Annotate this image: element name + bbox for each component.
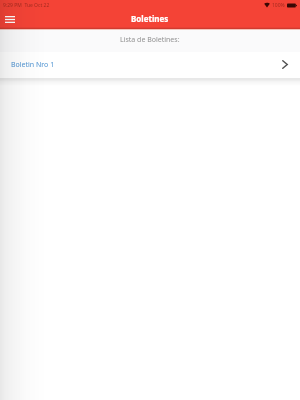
staticText: 100% bbox=[272, 2, 285, 9]
staticText: Lista de Boletines: bbox=[120, 35, 180, 45]
button[interactable]: Boletin Nro 1 bbox=[4, 52, 296, 78]
staticText: Boletin Nro 1 bbox=[11, 60, 55, 70]
staticText: 9:29 PM Tue Oct 22 bbox=[3, 2, 50, 9]
staticText: Boletines bbox=[131, 13, 169, 24]
button[interactable]: Open navigation menu bbox=[1, 11, 19, 27]
